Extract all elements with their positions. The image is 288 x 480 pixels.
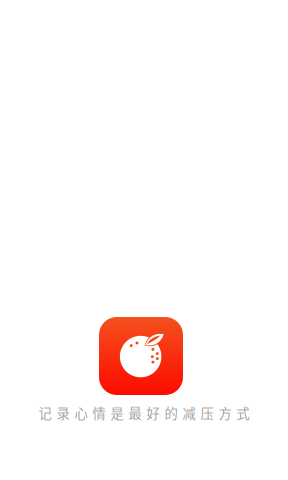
- staticText: 记录心情是最好的减压方式: [38, 403, 249, 422]
